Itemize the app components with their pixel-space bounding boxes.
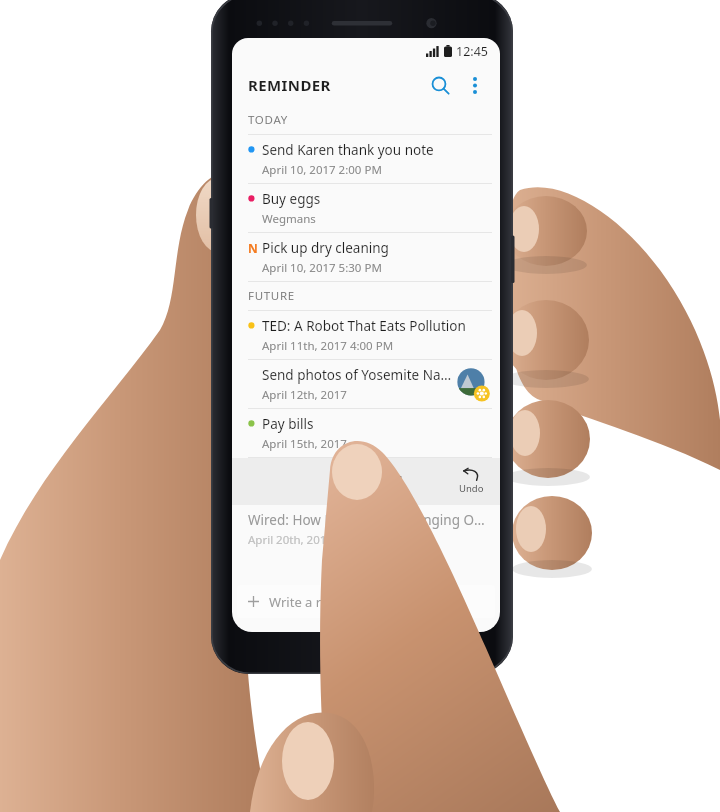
- staticText: TED: A Robot That Eats Pollution: [262, 317, 466, 335]
- staticText: April 10, 2017 5:30 PM: [262, 260, 382, 276]
- button[interactable]: Send Karen thank you note: [232, 135, 500, 183]
- staticText: April 20th, 2017: [248, 532, 333, 548]
- staticText: Pay bills: [262, 415, 314, 433]
- staticText: April 11th, 2017 4:00 PM: [262, 338, 394, 354]
- staticText: Wired: How Drones Are Changing Our...: [248, 511, 490, 529]
- button[interactable]: Pay bills: [232, 409, 500, 457]
- button[interactable]: Completed: [232, 458, 500, 505]
- staticText: Pick up dry cleaning: [262, 239, 389, 257]
- button[interactable]: Write a reminder: [237, 585, 495, 618]
- staticText: TODAY: [248, 112, 288, 128]
- button[interactable]: Search: [422, 67, 458, 103]
- staticText: Send photos of Yosemite National...: [262, 366, 456, 384]
- staticText: N: [248, 240, 258, 256]
- button[interactable]: TED: A Robot That Eats Pollution: [232, 311, 500, 359]
- staticText: Undo: [459, 482, 484, 495]
- staticText: April 10, 2017 2:00 PM: [262, 162, 382, 178]
- button[interactable]: Send photos of Yosemite National...: [232, 360, 500, 408]
- button[interactable]: More options: [458, 68, 492, 102]
- staticText: FUTURE: [248, 288, 295, 304]
- staticText: April 12th, 2017: [262, 387, 347, 403]
- staticText: REMINDER: [248, 75, 331, 95]
- button[interactable]: Wired: How Drones Are Changing Our...: [232, 505, 500, 553]
- button[interactable]: Undo: [459, 468, 484, 495]
- button[interactable]: N: [232, 233, 500, 281]
- staticText: Completed: [329, 473, 403, 491]
- staticText: Write a reminder: [269, 593, 373, 611]
- staticText: Wegmans: [262, 211, 316, 227]
- staticText: Send Karen thank you note: [262, 141, 434, 159]
- button[interactable]: Buy eggs: [232, 184, 500, 232]
- staticText: 12:45: [456, 43, 488, 60]
- staticText: Buy eggs: [262, 190, 321, 208]
- staticText: April 15th, 2017: [262, 436, 347, 452]
